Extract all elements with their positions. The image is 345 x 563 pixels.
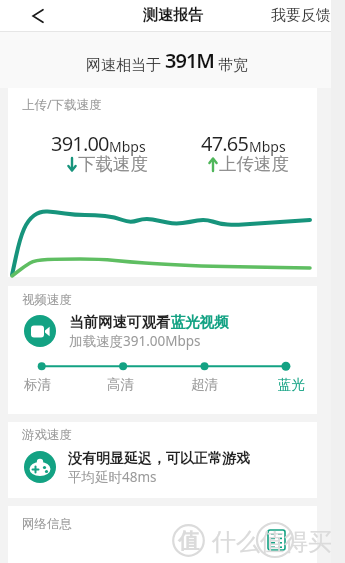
staticText: 带宽 <box>214 54 248 74</box>
staticText: 当前网速可观看蓝光视频 <box>69 313 229 331</box>
button[interactable]: 网络信息 <box>8 506 317 563</box>
button[interactable]: 标清 <box>7 376 67 393</box>
button[interactable]: 蓝光 <box>261 376 321 393</box>
button[interactable] <box>24 0 52 31</box>
staticText: 391.00 <box>51 130 109 157</box>
staticText: 蓝光 <box>278 376 305 393</box>
staticText: 值 <box>178 528 199 554</box>
staticText: 高清 <box>107 376 134 393</box>
staticText: 47.65 <box>201 130 249 157</box>
button[interactable]: 高清 <box>90 376 150 393</box>
button[interactable]: 我要反馈 <box>271 6 331 25</box>
staticText: 视频速度 <box>22 292 72 308</box>
staticText: 上传速度 <box>219 153 289 175</box>
staticText: 网络信息 <box>22 516 72 532</box>
staticText: 没有明显延迟，可以正常游戏 <box>68 450 250 468</box>
button[interactable]: 超清 <box>174 376 234 393</box>
staticText: 上传/下载速度 <box>22 96 102 113</box>
staticText: Mbps <box>109 137 146 156</box>
staticText: 平均延时48ms <box>68 468 157 486</box>
staticText: 超清 <box>191 376 218 393</box>
staticText: 下载速度 <box>78 153 148 175</box>
staticText: 网速相当于 <box>86 54 165 74</box>
staticText: 我要反馈 <box>271 6 331 25</box>
staticText: 什么值得买 <box>212 527 332 557</box>
staticText: 标清 <box>24 376 51 393</box>
staticText: Mbps <box>249 137 286 156</box>
staticText: 391M <box>165 47 214 74</box>
staticText: 测速报告 <box>143 6 203 25</box>
staticText: 加载速度391.00Mbps <box>69 332 201 350</box>
staticText: 游戏速度 <box>22 427 72 443</box>
